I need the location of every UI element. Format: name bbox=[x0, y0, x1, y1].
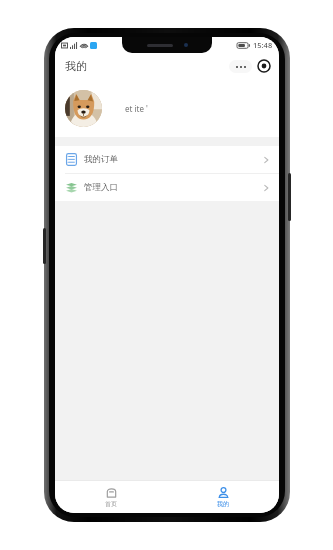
button[interactable]: 首页 bbox=[55, 487, 167, 508]
staticText: 管理入口 bbox=[84, 182, 118, 193]
button[interactable]: 管理入口 bbox=[55, 174, 279, 201]
button[interactable]: Scan code bbox=[257, 59, 271, 73]
button[interactable]: 我的 bbox=[167, 487, 279, 508]
button[interactable]: et ite ' bbox=[55, 79, 279, 137]
staticText: 15:48 bbox=[253, 40, 273, 50]
staticText: 我的 bbox=[65, 59, 87, 73]
staticText: et ite ' bbox=[125, 103, 148, 114]
button[interactable]: 我的订单 bbox=[55, 146, 279, 173]
staticText: 我的订单 bbox=[84, 154, 118, 165]
button[interactable]: More options bbox=[229, 60, 252, 73]
staticText: 我的 bbox=[217, 500, 229, 508]
staticText: 首页 bbox=[105, 500, 117, 508]
